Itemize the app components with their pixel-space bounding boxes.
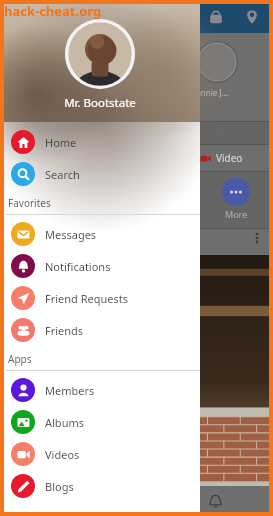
button[interactable]: Post options [248,229,266,247]
staticText: Videos [45,447,80,462]
button[interactable]: Friends [0,314,200,346]
staticText: Friends [45,323,84,338]
staticText: Friend Requests [45,291,129,306]
staticText: More [225,208,248,220]
button[interactable]: Notifications [202,488,228,514]
button[interactable]: Notifications [0,250,200,282]
button[interactable]: Blogs [0,470,200,502]
button[interactable]: Mr. Bootstate [0,0,200,122]
button[interactable]: Members [0,374,200,406]
button[interactable]: Home [0,126,200,158]
staticText: Favorites [8,196,51,210]
staticText: hack-cheat.org [4,2,102,20]
button[interactable]: Store [203,4,229,30]
staticText: Messages [45,227,97,242]
staticText: Home [45,135,77,150]
button[interactable]: Messages [0,218,200,250]
button[interactable]: Albums [0,406,200,438]
button[interactable]: Friend Requests [0,282,200,314]
staticText: onnie J... [196,87,228,98]
staticText: Mr. Bootstate [64,95,136,111]
staticText: Video [216,151,243,165]
button[interactable] [196,41,238,83]
button[interactable]: Videos [0,438,200,470]
staticText: Search [45,167,80,182]
staticText: Members [45,383,95,398]
button[interactable]: More [222,178,250,206]
button[interactable]: Search [0,158,200,190]
staticText: Apps [8,352,32,366]
button[interactable]: Location [239,4,265,30]
staticText: Albums [45,415,84,430]
staticText: Notifications [45,259,111,274]
staticText: Blogs [45,479,74,494]
